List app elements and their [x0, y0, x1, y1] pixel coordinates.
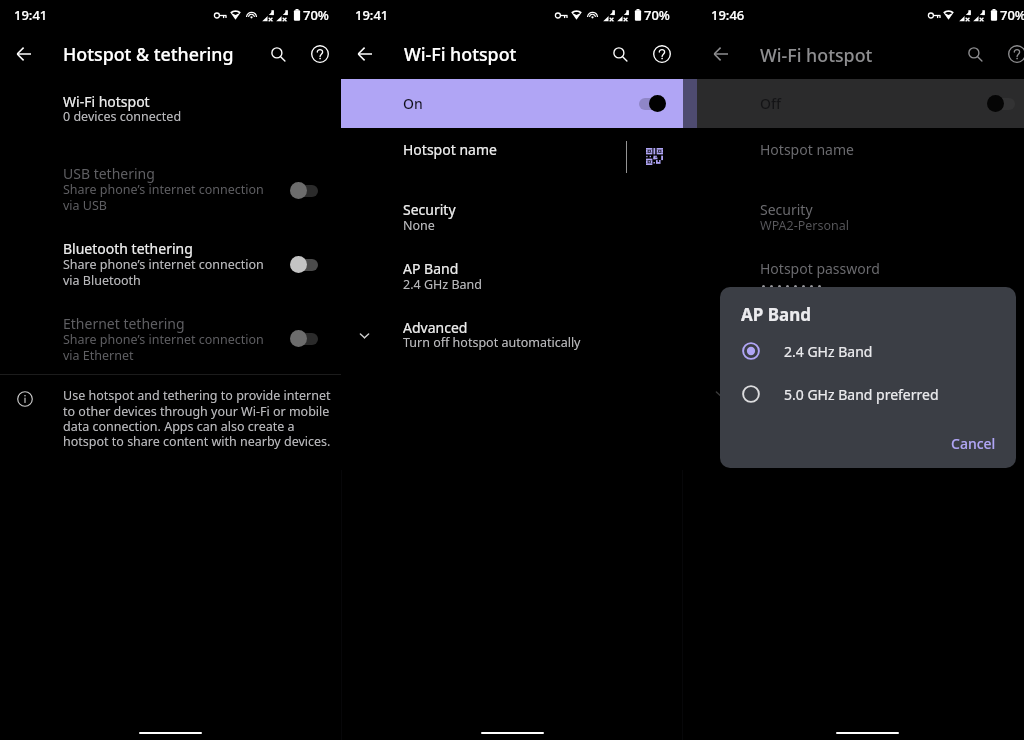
button[interactable]: Bluetooth tethering	[0, 234, 341, 294]
staticText: None	[403, 217, 435, 234]
staticText: Share phone’s internet connection via US…	[63, 181, 264, 214]
button[interactable]: Off	[290, 182, 318, 199]
button[interactable]: Off	[290, 330, 318, 347]
staticText: WPA2-Personal	[760, 217, 850, 234]
button[interactable]: Help	[1002, 39, 1024, 69]
staticText: Use hotspot and tethering to provide int…	[63, 387, 331, 450]
staticText: 5.0 GHz Band preferred	[784, 385, 939, 404]
button[interactable]: Navigate up	[350, 39, 380, 69]
button[interactable]: Share hotspot QR code	[632, 133, 683, 177]
staticText: Wi-Fi hotspot	[63, 92, 150, 111]
staticText: Advanced	[403, 318, 468, 337]
button[interactable]: Search	[263, 39, 293, 69]
staticText: Share phone’s internet connection via Bl…	[63, 256, 264, 289]
staticText: On	[403, 94, 423, 113]
button[interactable]: Search	[960, 39, 990, 69]
staticText: Hotspot password	[760, 259, 880, 278]
button[interactable]: Hotspot off	[697, 79, 1024, 128]
button[interactable]: Advanced	[341, 312, 683, 356]
staticText: 19:41	[355, 6, 389, 24]
staticText: 0 devices connected	[63, 108, 182, 125]
button[interactable]: Off	[290, 256, 318, 273]
staticText: Cancel	[951, 434, 996, 453]
button[interactable]: Navigate up	[706, 39, 736, 69]
button[interactable]: Hotspot on	[341, 79, 683, 128]
button[interactable]: 5.0 GHz Band preferred	[720, 375, 1016, 413]
staticText: AP Band	[403, 259, 459, 278]
button[interactable]: AP Band	[341, 253, 683, 297]
staticText: 19:46	[711, 6, 745, 24]
button[interactable]: Security	[341, 194, 683, 238]
staticText: Share phone’s internet connection via Et…	[63, 331, 264, 364]
staticText: 70%	[644, 6, 670, 24]
staticText: Hotspot name	[760, 140, 854, 159]
staticText: Bluetooth tethering	[63, 239, 193, 258]
button[interactable]: Help	[647, 39, 677, 69]
staticText: 70%	[303, 6, 329, 24]
button[interactable]: Search	[605, 39, 635, 69]
staticText: Turn off hotspot automatically	[403, 334, 581, 351]
staticText: 2.4 GHz Band	[403, 276, 482, 293]
staticText: Hotspot & tethering	[63, 42, 234, 66]
button[interactable]: Hotspot name	[341, 133, 623, 177]
button[interactable]: Cancel	[947, 429, 999, 457]
staticText: Security	[403, 200, 456, 219]
staticText: USB tethering	[63, 164, 155, 183]
staticText: 2.4 GHz Band	[784, 342, 873, 361]
button[interactable]: Navigate up	[9, 39, 39, 69]
staticText: Off	[760, 94, 781, 113]
staticText: Ethernet tethering	[63, 314, 185, 333]
button[interactable]: Off	[987, 95, 1015, 112]
button[interactable]: Wi-Fi hotspot	[0, 86, 341, 132]
staticText: 19:41	[14, 6, 48, 24]
staticText: AP Band	[741, 303, 812, 326]
button[interactable]: USB tethering	[0, 159, 341, 219]
staticText: Security	[760, 200, 813, 219]
button[interactable]: Ethernet tethering	[0, 310, 341, 370]
staticText: Wi-Fi hotspot	[404, 42, 517, 66]
staticText: 70%	[1000, 6, 1024, 24]
button[interactable]: Help	[305, 39, 335, 69]
staticText: Wi-Fi hotspot	[760, 43, 873, 67]
button[interactable]: 2.4 GHz Band	[720, 332, 1016, 370]
staticText: Hotspot name	[403, 140, 497, 159]
button[interactable]: On	[638, 95, 666, 112]
